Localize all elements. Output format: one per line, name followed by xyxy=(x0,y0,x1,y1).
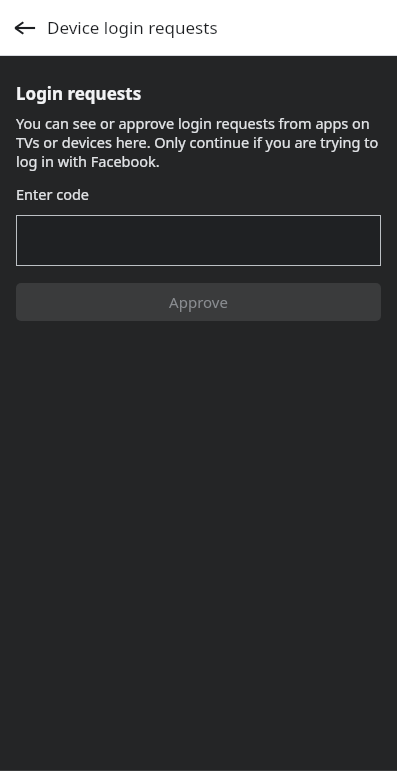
button[interactable]: Back xyxy=(6,9,44,47)
staticText: You can see or approve login requests fr… xyxy=(16,113,383,171)
staticText: Login requests xyxy=(16,82,142,105)
button[interactable]: Approve xyxy=(16,283,381,321)
staticText: Device login requests xyxy=(47,16,218,39)
staticText: Enter code xyxy=(16,184,90,204)
staticText: Approve xyxy=(169,292,228,312)
button[interactable]: Enter code input field xyxy=(16,215,381,266)
